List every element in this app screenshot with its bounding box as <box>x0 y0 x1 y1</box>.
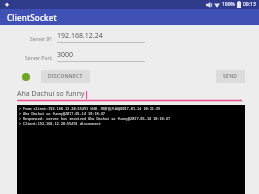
staticText: 100% <box>222 1 235 8</box>
staticText: > <box>19 111 22 116</box>
staticText: > <box>19 106 22 111</box>
button[interactable]: SEND <box>216 70 245 83</box>
staticText: 192.168.12.24 <box>57 31 103 41</box>
button[interactable]: DISCONNECT <box>41 70 90 83</box>
button[interactable]: > <box>17 105 245 194</box>
staticText: Client:192.168.12.28:55491 disconnect <box>23 121 101 126</box>
staticText: Aha Dachui so funny@2017-01-14 10:18:47 <box>23 111 105 116</box>
staticText: > <box>19 121 22 126</box>
staticText: 00:13 <box>243 1 256 8</box>
staticText: Responsed: server has received Aha Dachu… <box>23 116 170 121</box>
staticText: Server IP: <box>30 36 53 43</box>
staticText: Server Port: <box>25 55 53 62</box>
staticText: From client:192.168.12.28:55491 说明，现阶段只能… <box>23 106 161 111</box>
button[interactable]: Connection status: connected <box>20 71 32 83</box>
staticText: > <box>19 116 22 121</box>
staticText: Aha Dachui so funny <box>17 89 85 99</box>
staticText: 3000 <box>57 50 74 60</box>
staticText: ClientSocket <box>7 12 57 23</box>
staticText: DISCONNECT <box>48 73 83 80</box>
staticText: SEND <box>223 73 238 80</box>
